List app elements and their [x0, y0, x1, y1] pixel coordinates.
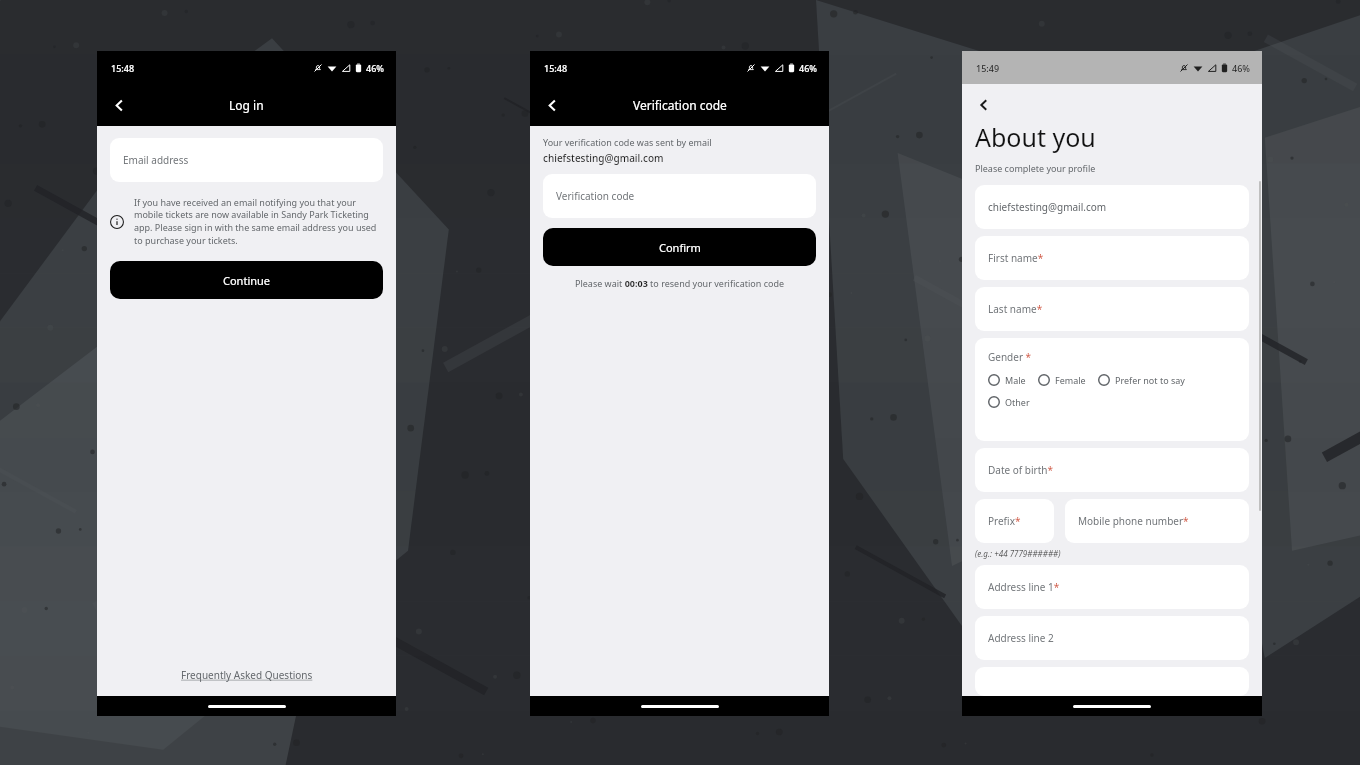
staticText: Male: [1005, 374, 1026, 386]
staticText: Gender *: [988, 350, 1032, 364]
staticText: 15:49: [976, 62, 1000, 74]
staticText: 46%: [1232, 62, 1250, 74]
button[interactable]: Verification code: [543, 174, 816, 218]
staticText: Prefix*: [988, 514, 1021, 528]
button[interactable]: Address line 1*: [975, 565, 1249, 609]
staticText: Please complete your profile: [975, 162, 1096, 174]
staticText: About you: [975, 120, 1096, 154]
button[interactable]: Back: [969, 90, 999, 120]
staticText: Date of birth*: [988, 463, 1054, 477]
staticText: Confirm: [659, 240, 701, 255]
staticText: Continue: [223, 273, 271, 288]
button[interactable]: Mobile phone number*: [1065, 499, 1249, 543]
staticText: 46%: [366, 62, 384, 74]
staticText: 15:48: [111, 62, 135, 74]
staticText: Other: [1005, 396, 1030, 408]
button[interactable]: First name*: [975, 236, 1249, 280]
staticText: Female: [1055, 374, 1086, 386]
button[interactable]: Last name*: [975, 287, 1249, 331]
button[interactable]: Date of birth*: [975, 448, 1249, 492]
staticText: chiefstesting@gmail.com: [543, 151, 664, 165]
button[interactable]: Other: [988, 396, 1030, 408]
staticText: (e.g.: +44 7779######): [975, 548, 1061, 559]
staticText: chiefstesting@gmail.com: [988, 200, 1107, 214]
staticText: Mobile phone number*: [1078, 514, 1189, 528]
button[interactable]: Back: [537, 90, 567, 120]
button[interactable]: Prefix*: [975, 499, 1054, 543]
staticText: Your verification code was sent by email: [543, 136, 712, 148]
button[interactable]: Continue: [110, 261, 383, 299]
button[interactable]: Prefer not to say: [1098, 374, 1185, 386]
button[interactable]: Confirm: [543, 228, 816, 266]
staticText: Address line 1*: [988, 580, 1060, 594]
staticText: First name*: [988, 251, 1044, 265]
staticText: 15:48: [544, 62, 568, 74]
button[interactable]: Frequently Asked Questions: [175, 662, 319, 688]
button[interactable]: Male: [988, 374, 1026, 386]
staticText: Last name*: [988, 302, 1043, 316]
staticText: Verification code: [633, 97, 727, 113]
staticText: Prefer not to say: [1115, 374, 1185, 386]
button[interactable]: Female: [1038, 374, 1086, 386]
staticText: 46%: [799, 62, 817, 74]
button[interactable]: chiefstesting@gmail.com: [975, 185, 1249, 229]
staticText: Email address: [123, 153, 189, 167]
staticText: If you have received an email notifying …: [134, 196, 383, 247]
button[interactable]: Email address: [110, 138, 383, 182]
button[interactable]: Address line 2: [975, 616, 1249, 660]
staticText: Verification code: [556, 189, 635, 203]
button[interactable]: Please wait 00:03 to resend your verific…: [575, 277, 785, 289]
staticText: Log in: [229, 97, 264, 113]
staticText: Address line 2: [988, 631, 1054, 645]
button[interactable]: Back: [104, 90, 134, 120]
